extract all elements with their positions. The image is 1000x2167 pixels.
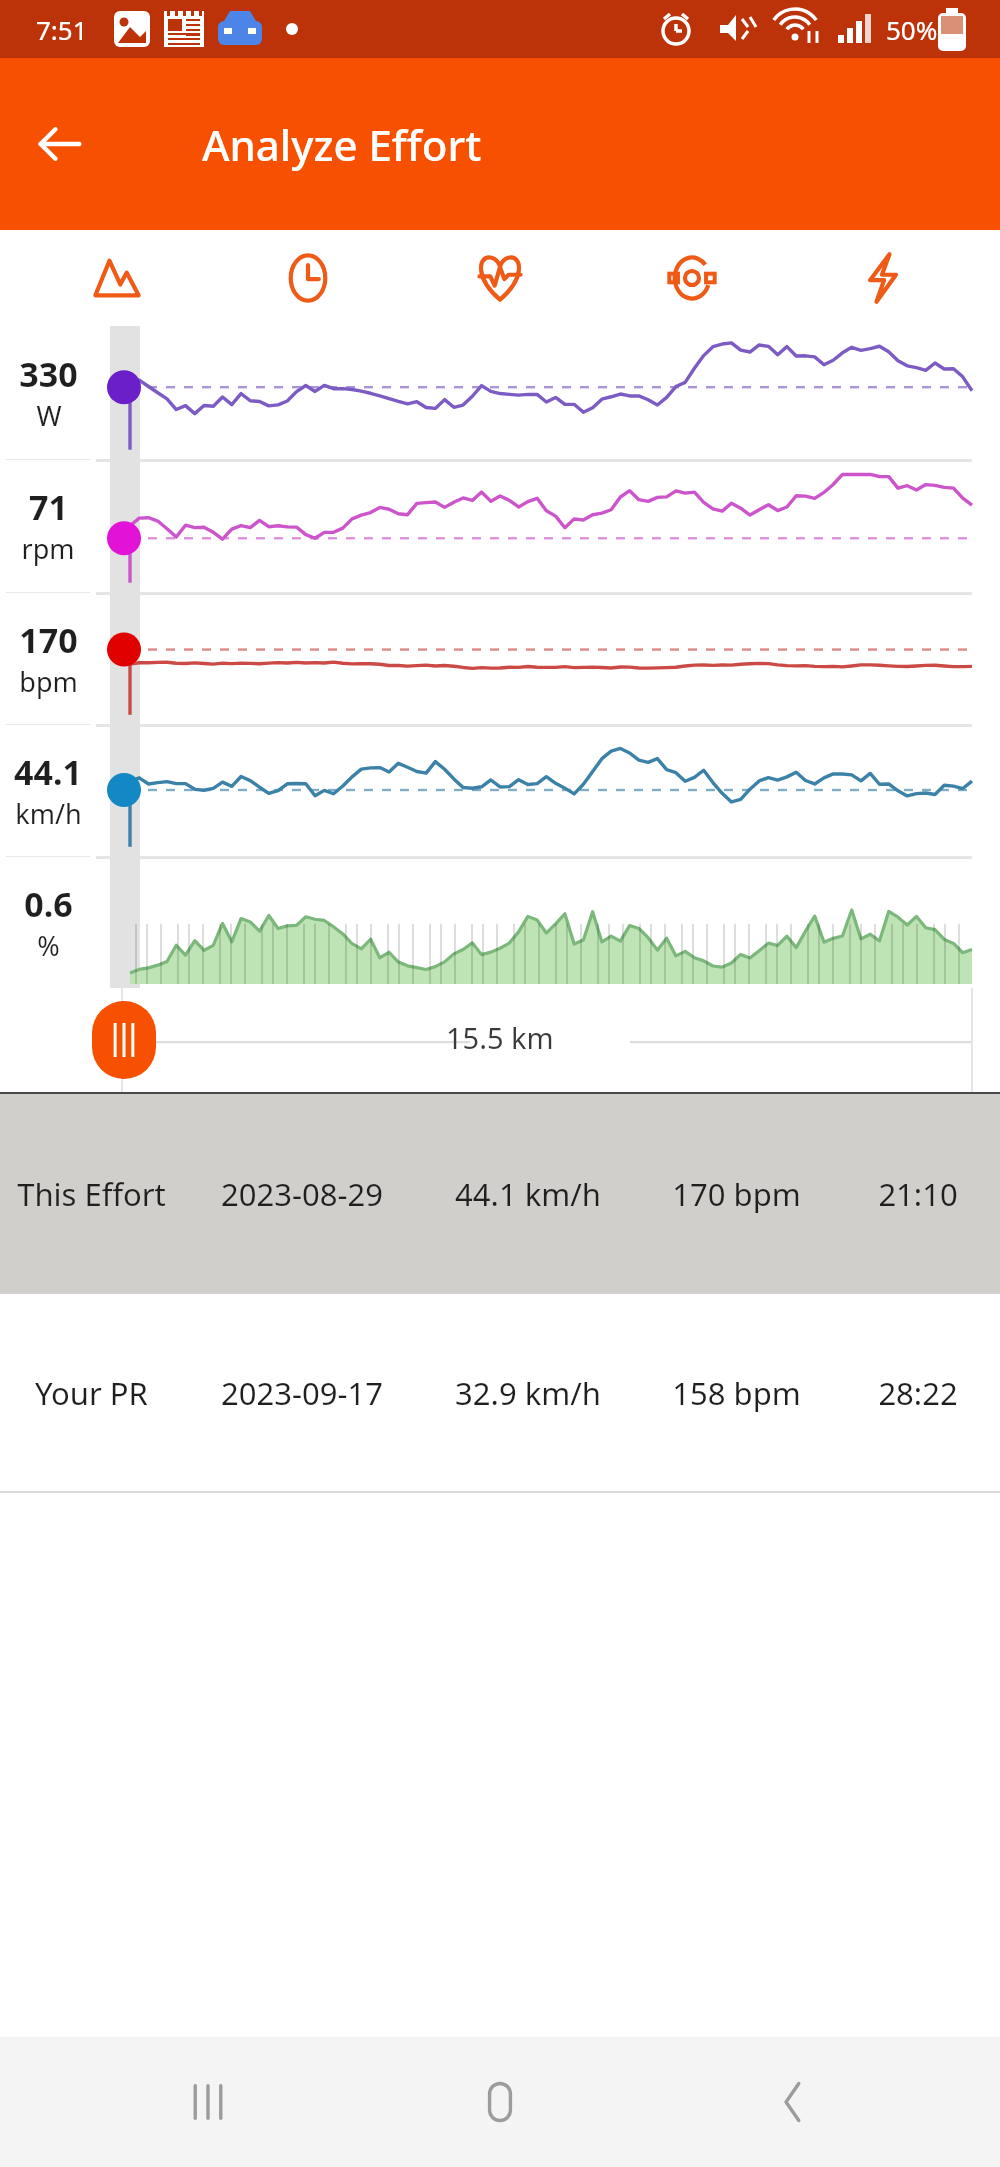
staticText: Your PR <box>35 1372 148 1414</box>
staticText: 44.1 <box>14 749 82 795</box>
staticText: 7:51 <box>36 12 88 47</box>
button[interactable]: This Effort <box>0 1094 1000 1294</box>
button[interactable]: Back <box>22 106 98 182</box>
staticText: km/h <box>15 795 82 832</box>
button[interactable]: Back <box>708 2037 878 2167</box>
button[interactable]: Recents <box>123 2037 293 2167</box>
staticText: 2023-09-17 <box>221 1372 383 1414</box>
staticText: W <box>36 397 62 434</box>
button[interactable]: Power <box>808 230 958 326</box>
staticText: 71 <box>29 484 68 530</box>
staticText: This Effort <box>17 1173 166 1215</box>
button[interactable]: Time <box>233 230 383 326</box>
staticText: bpm <box>19 663 78 700</box>
staticText: 50% <box>886 12 938 47</box>
staticText: 330 <box>19 351 78 397</box>
staticText: 0.6 <box>24 881 73 927</box>
staticText: 170 <box>19 617 78 663</box>
staticText: 2023-08-29 <box>221 1173 383 1215</box>
button[interactable]: Your PR <box>0 1294 1000 1491</box>
staticText: % <box>37 927 60 964</box>
staticText: 28:22 <box>878 1372 958 1414</box>
button[interactable]: Cadence <box>617 230 767 326</box>
staticText: 21:10 <box>878 1173 958 1215</box>
staticText: 15.5 km <box>446 1018 554 1057</box>
staticText: 170 bpm <box>672 1173 801 1215</box>
staticText: 32.9 km/h <box>455 1372 601 1414</box>
button[interactable]: Scrub handle <box>92 1001 156 1079</box>
staticText: Analyze Effort <box>202 116 482 173</box>
staticText: 44.1 km/h <box>455 1173 601 1215</box>
button[interactable]: Elevation <box>42 230 192 326</box>
staticText: rpm <box>21 530 75 567</box>
staticText: 158 bpm <box>672 1372 801 1414</box>
button[interactable]: Heart rate <box>425 230 575 326</box>
button[interactable]: Home <box>415 2037 585 2167</box>
